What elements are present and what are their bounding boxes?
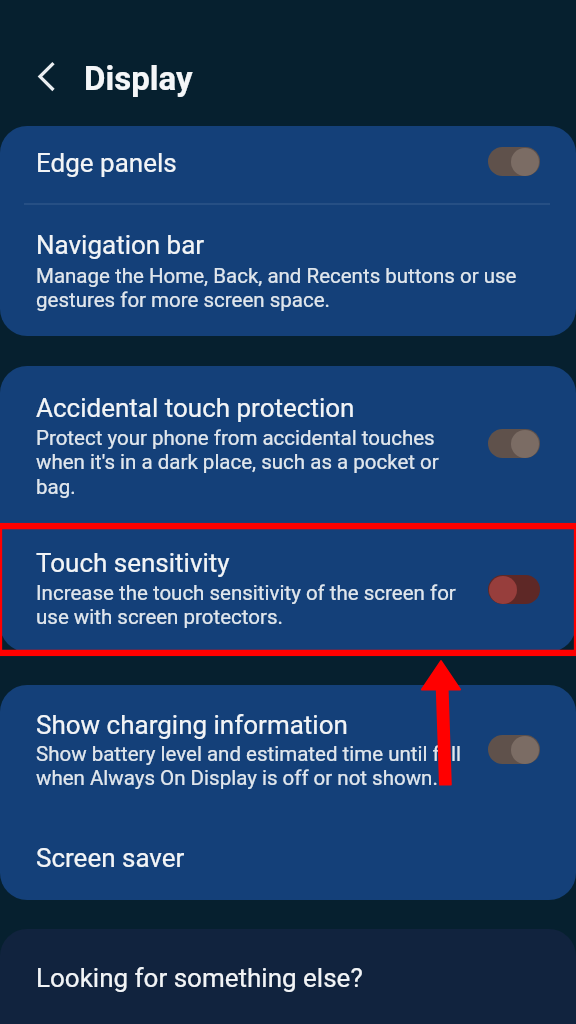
- button[interactable]: Toggle switch: [488, 575, 540, 604]
- staticText: Looking for something else?: [36, 963, 363, 993]
- staticText: Manage the Home, Back, and Recents butto…: [36, 264, 542, 312]
- button[interactable]: [0, 126, 576, 205]
- button[interactable]: [0, 366, 576, 522]
- staticText: Edge panels: [36, 148, 177, 178]
- staticText: Increase the touch sensitivity of the sc…: [36, 581, 471, 629]
- staticText: Show charging information: [36, 710, 348, 740]
- staticText: Protect your phone from accidental touch…: [36, 426, 471, 499]
- button[interactable]: Toggle switch: [488, 429, 540, 458]
- button[interactable]: Back: [26, 56, 68, 98]
- staticText: Display: [84, 59, 193, 98]
- button[interactable]: [0, 522, 576, 652]
- button[interactable]: Toggle switch: [488, 735, 540, 764]
- button[interactable]: [0, 205, 576, 336]
- staticText: Screen saver: [36, 843, 185, 873]
- staticText: Touch sensitivity: [36, 548, 230, 578]
- staticText: Accidental touch protection: [36, 393, 355, 423]
- button[interactable]: [0, 929, 576, 1024]
- button[interactable]: [0, 685, 576, 815]
- staticText: Navigation bar: [36, 230, 205, 260]
- button[interactable]: Toggle switch: [488, 147, 540, 176]
- button[interactable]: [0, 815, 576, 900]
- staticText: Show battery level and estimated time un…: [36, 742, 471, 790]
